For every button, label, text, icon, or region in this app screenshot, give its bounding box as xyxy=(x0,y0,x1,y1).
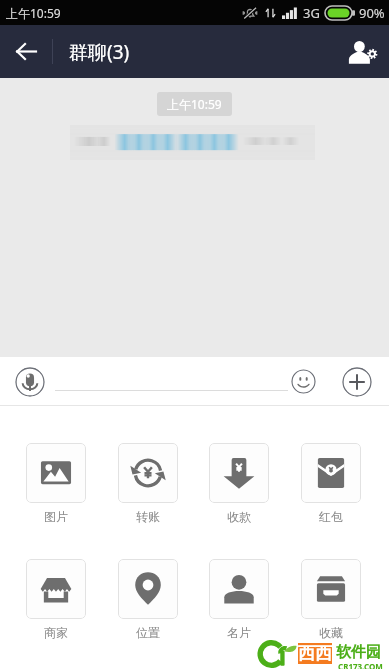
staticText: 收款 xyxy=(227,509,251,524)
button[interactable]: 名片 xyxy=(209,559,269,640)
staticText: 西西 xyxy=(298,643,332,664)
staticText: 软件园 xyxy=(336,643,381,662)
staticText: 红包 xyxy=(319,509,343,524)
button[interactable]: 红包 xyxy=(301,443,361,524)
staticText: 转账 xyxy=(136,509,160,524)
button[interactable]: Chat settings xyxy=(337,25,389,78)
staticText: CR173.COM xyxy=(338,661,383,669)
button[interactable]: 商家 xyxy=(26,559,86,640)
staticText: 位置 xyxy=(136,625,160,640)
staticText: 图片 xyxy=(44,509,68,524)
staticText: 群聊(3) xyxy=(69,39,130,65)
button[interactable]: 收款 xyxy=(209,443,269,524)
button[interactable]: Back xyxy=(0,25,52,78)
button[interactable]: 转账 xyxy=(118,443,178,524)
button[interactable]: 收藏 xyxy=(301,559,361,640)
staticText: 商家 xyxy=(44,625,68,640)
button[interactable]: More xyxy=(342,367,372,397)
button[interactable]: 图片 xyxy=(26,443,86,524)
staticText: 名片 xyxy=(227,625,251,640)
staticText: 上午10:59 xyxy=(6,5,61,21)
button[interactable]: Voice input xyxy=(15,367,45,397)
staticText: 上午10:59 xyxy=(167,96,222,112)
staticText: 收藏 xyxy=(319,625,343,640)
staticText: 90% xyxy=(359,4,385,22)
button[interactable]: Emoji xyxy=(291,369,316,394)
button[interactable]: 位置 xyxy=(118,559,178,640)
staticText: 3G xyxy=(303,4,320,22)
